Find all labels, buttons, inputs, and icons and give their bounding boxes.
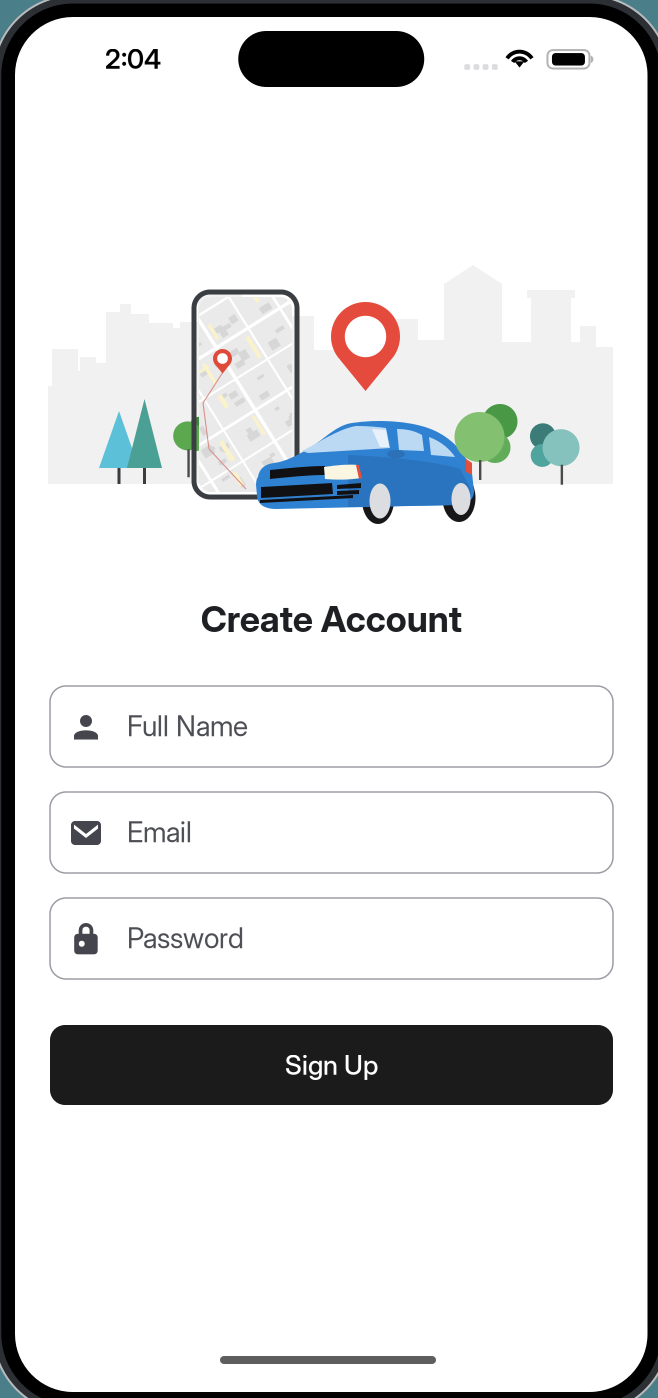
staticText: 2:04 xyxy=(105,43,161,75)
staticText: Email xyxy=(127,815,192,849)
staticText: Create Account xyxy=(201,597,462,641)
staticText: Sign Up xyxy=(285,1049,378,1081)
button[interactable]: Sign Up xyxy=(50,1025,613,1105)
staticText: Password xyxy=(127,921,244,955)
button[interactable]: Email xyxy=(50,792,613,873)
button[interactable]: Password xyxy=(50,898,613,979)
button[interactable]: Full Name xyxy=(50,686,613,767)
staticText: Full Name xyxy=(127,709,248,743)
